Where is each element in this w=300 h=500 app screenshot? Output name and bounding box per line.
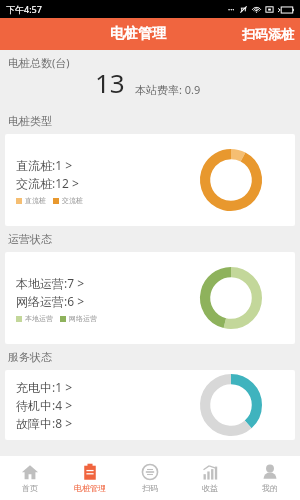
button[interactable]: 本地运营:7 > [16,274,85,292]
staticText: 电桩管理 [110,25,166,43]
other: 收益 [201,463,219,481]
staticText: 网络运营:6 > [16,293,85,309]
staticText: 运营状态 [8,232,52,246]
button[interactable]: 故障中:8 > [16,414,73,432]
staticText: 直流桩:1 > [16,157,73,173]
other: 扫码 [141,463,159,481]
staticText: 13 [95,65,125,100]
button[interactable]: 电桩管理 [60,456,120,500]
staticText: 扫码添桩 [242,26,294,42]
staticText: 下午4:57 [6,3,42,15]
staticText: 电桩管理 [74,483,106,493]
staticText: 充电中:1 > [16,379,73,395]
button[interactable]: 收益 [180,456,240,500]
staticText: 服务状态 [8,350,52,364]
other: 首页 [21,463,39,481]
staticText: 待机中:4 > [16,397,73,413]
staticText: 本站费率: 0.9 [135,82,201,97]
staticText: 我的 [262,483,278,493]
staticText: 首页 [22,483,38,493]
staticText: 故障中:8 > [16,415,73,431]
button[interactable]: 交流桩:12 > [16,174,79,192]
other: 电桩管理 [81,463,99,481]
button[interactable]: 我的 [240,456,300,500]
staticText: 交流桩 [62,196,83,205]
button[interactable]: 直流桩:1 > [16,156,73,174]
staticText: ··· [228,4,235,15]
staticText: 电桩类型 [8,114,52,128]
button[interactable]: 待机中:4 > [16,396,73,414]
button[interactable]: 扫码 [120,456,180,500]
button[interactable]: 扫码添桩 [236,22,300,46]
other: 我的 [261,463,279,481]
staticText: 本地运营 [25,314,53,323]
staticText: 电桩总数(台) [8,55,70,70]
button[interactable]: 网络运营:6 > [16,292,85,310]
staticText: 扫码 [142,483,158,493]
button[interactable]: 充电中:1 > [16,378,73,396]
staticText: 收益 [202,483,218,493]
button[interactable]: 首页 [0,456,60,500]
staticText: 交流桩:12 > [16,175,79,191]
staticText: 网络运营 [69,314,97,323]
staticText: 直流桩 [25,196,46,205]
staticText: 本地运营:7 > [16,275,85,291]
